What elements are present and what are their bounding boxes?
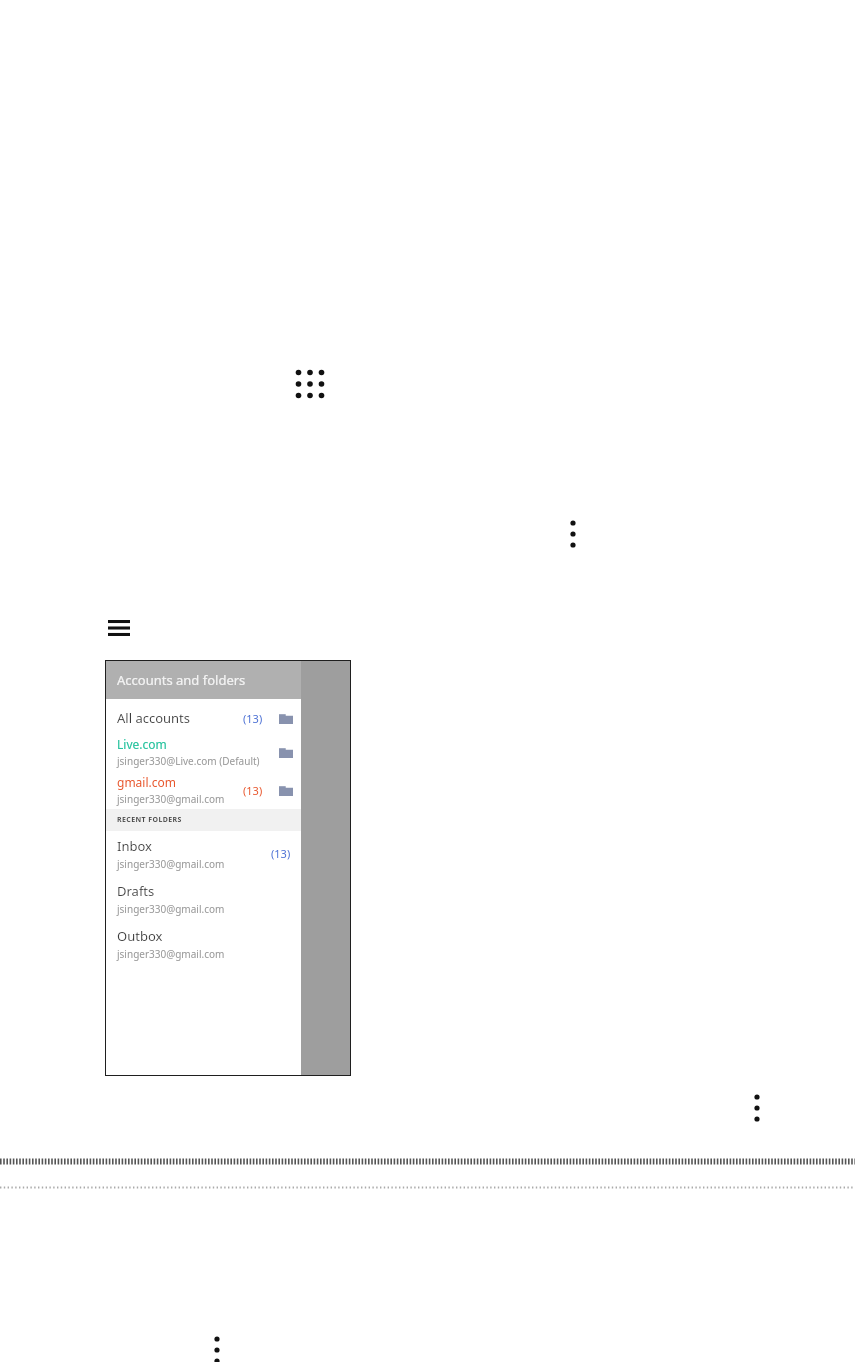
- staticText: Top by ...: [112, 850, 148, 861]
- staticText: Live.com: [117, 736, 167, 752]
- button[interactable]: Live.com: [106, 733, 301, 771]
- staticText: ntc: [112, 783, 126, 795]
- button[interactable]: Drafts: [106, 876, 301, 921]
- button[interactable]: All accounts: [106, 703, 301, 733]
- staticText: (13): [271, 846, 291, 861]
- staticText: Microsoft account: [112, 728, 188, 740]
- staticText: jsinger330@Live.com (Default): [117, 754, 260, 768]
- button[interactable]: Navigation menu: [108, 620, 130, 636]
- staticText: Outbox: [117, 927, 163, 945]
- staticText: Inbox: [117, 837, 152, 855]
- staticText: Faceb...: [112, 805, 144, 817]
- staticText: (13): [243, 783, 263, 798]
- button[interactable]: More options: [205, 1330, 229, 1362]
- staticText: Hello World ...: [112, 761, 171, 773]
- button[interactable]: More options: [745, 1088, 769, 1128]
- staticText: RECENT FOLDERS: [117, 815, 182, 825]
- button[interactable]: More options: [561, 514, 585, 554]
- staticText: (13): [243, 711, 263, 726]
- button[interactable]: gmail.com: [106, 771, 301, 809]
- button[interactable]: Outbox: [106, 921, 301, 966]
- staticText: jsinger330@gmail.com: [117, 857, 225, 871]
- staticText: y to find po...: [112, 817, 161, 828]
- staticText: All accounts: [117, 709, 191, 727]
- staticText: Accounts and folders: [117, 671, 246, 689]
- staticText: jsinger330@gmail.com: [117, 902, 225, 916]
- staticText: gmail.com: [117, 774, 176, 790]
- button[interactable]: Apps: [294, 368, 326, 400]
- staticText: Drafts: [117, 882, 155, 900]
- staticText: jsinger330@gmail.com: [117, 947, 225, 961]
- staticText: jsinger330@gmail.com: [117, 792, 225, 806]
- button[interactable]: Inbox: [106, 831, 301, 876]
- staticText: s env...: [112, 838, 141, 850]
- staticText: Sign-in account: [112, 740, 170, 751]
